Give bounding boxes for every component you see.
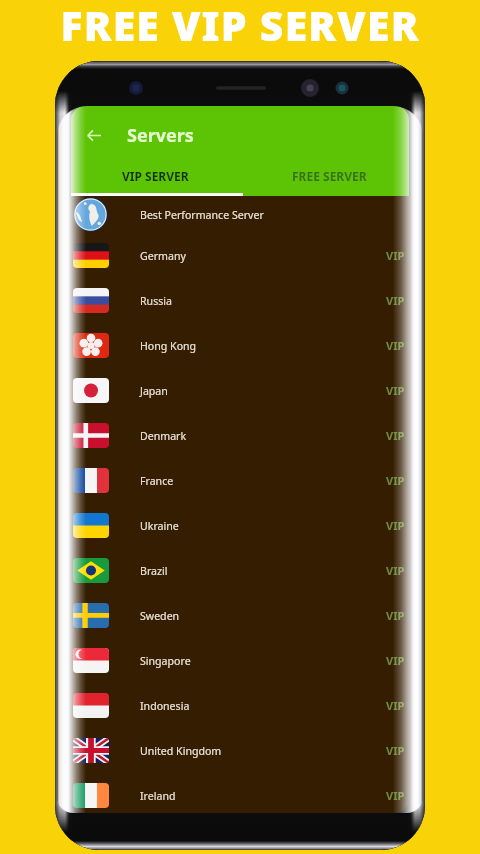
staticText: VIP [386,608,405,623]
staticText: VIP [386,383,405,398]
button[interactable]: VIP SERVER [71,158,240,194]
staticText: France [140,474,174,488]
button[interactable]: Ukraine [71,503,409,548]
button[interactable]: Denmark [71,413,409,458]
staticText: VIP [386,473,405,488]
button[interactable]: Russia [71,278,409,323]
button[interactable]: FREE SERVER [240,158,409,194]
button[interactable]: Japan [71,368,409,413]
button[interactable]: France [71,458,409,503]
staticText: FREE VIP SERVER [0,0,480,53]
staticText: United Kingdom [140,744,222,758]
staticText: Servers [127,123,194,148]
staticText: Singapore [140,654,191,668]
staticText: Denmark [140,429,187,443]
staticText: Best Performance Server [140,208,264,222]
staticText: Ireland [140,789,176,803]
staticText: VIP [386,743,405,758]
staticText: VIP [386,788,405,803]
staticText: Russia [140,294,172,308]
button[interactable]: Germany [71,233,409,278]
button[interactable]: Best Performance Server [71,196,409,233]
staticText: Sweden [140,609,180,623]
staticText: VIP [386,518,405,533]
staticText: Germany [140,249,186,263]
staticText: VIP [386,248,405,263]
staticText: VIP SERVER [122,168,189,184]
staticText: Indonesia [140,699,190,713]
button[interactable]: Sweden [71,593,409,638]
button[interactable]: United Kingdom [71,728,409,773]
staticText: Hong Kong [140,339,197,353]
staticText: Ukraine [140,519,179,533]
staticText: VIP [386,428,405,443]
staticText: VIP [386,698,405,713]
staticText: VIP [386,293,405,308]
staticText: Brazil [140,564,168,578]
staticText: VIP [386,653,405,668]
staticText: Japan [140,384,168,398]
staticText: VIP [386,338,405,353]
button[interactable]: Back [71,112,116,158]
button[interactable]: Indonesia [71,683,409,728]
button[interactable]: Brazil [71,548,409,593]
button[interactable]: Singapore [71,638,409,683]
staticText: FREE SERVER [292,168,367,184]
button[interactable]: Hong Kong [71,323,409,368]
button[interactable]: Ireland [71,773,409,813]
staticText: VIP [386,563,405,578]
